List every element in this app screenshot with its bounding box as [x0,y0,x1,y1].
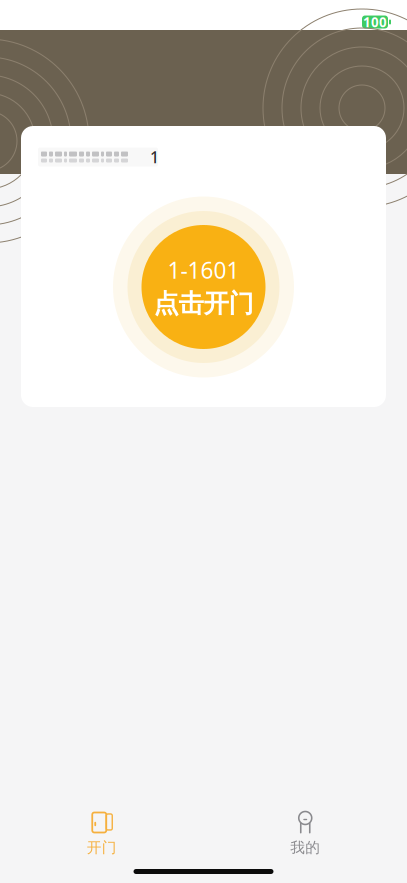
button[interactable]: 我的 [203,809,407,859]
staticText: 我的 [290,838,320,856]
staticText: 点击开门 [153,288,253,319]
staticText: 1-1601 [167,255,239,285]
staticText: 100 [363,13,387,31]
button[interactable]: 开门 [0,809,203,859]
staticText: 1 [150,146,159,168]
button[interactable]: 1-1601 [113,196,294,377]
staticText: 开门 [87,838,117,856]
